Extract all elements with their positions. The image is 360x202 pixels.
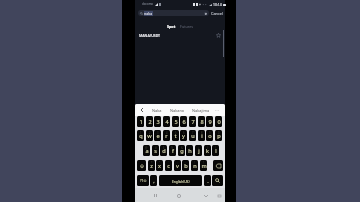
staticText: 0 [218, 131, 220, 135]
staticText: ＊＊ [202, 3, 208, 6]
staticText: ) [215, 146, 216, 150]
staticText: 4 [166, 131, 168, 135]
button[interactable]: . [204, 175, 211, 186]
button[interactable]: - [186, 145, 193, 156]
button[interactable]: Switch keyboard [214, 188, 224, 202]
button[interactable]: Home [174, 188, 184, 202]
button[interactable]: ) [212, 145, 219, 156]
button[interactable]: & [178, 145, 185, 156]
button[interactable]: 6 [180, 130, 187, 141]
button[interactable]: ? [200, 160, 207, 171]
staticText: c [167, 162, 170, 170]
staticText: , [153, 177, 155, 185]
button[interactable]: More suggestions [213, 104, 221, 116]
staticText: b [184, 162, 188, 170]
button[interactable]: 3 [154, 130, 161, 141]
staticText: q [139, 132, 143, 140]
staticText: & [181, 146, 183, 150]
staticText: s [154, 147, 157, 155]
button[interactable]: 9 [206, 116, 213, 127]
button[interactable]: 0 [215, 116, 222, 127]
button[interactable]: Recents [150, 188, 160, 202]
button[interactable]: Spot [165, 24, 178, 29]
staticText: 5 [175, 131, 177, 135]
button[interactable]: Search [212, 175, 223, 186]
button[interactable]: Hide keyboard [201, 188, 211, 202]
staticText: 9 [208, 118, 212, 126]
staticText: w [147, 132, 152, 140]
staticText: 8 [201, 131, 203, 135]
staticText: " [159, 161, 161, 165]
button[interactable]: 2 [146, 116, 153, 127]
staticText: ( [207, 146, 208, 150]
other: Add to favourites [216, 33, 221, 38]
button[interactable]: " [156, 160, 163, 171]
button[interactable]: 1 [137, 130, 144, 141]
staticText: r [165, 132, 168, 140]
button[interactable]: ?1① [137, 175, 149, 186]
staticText: ! [194, 161, 195, 165]
button[interactable]: 7 [189, 116, 196, 127]
staticText: naka [144, 11, 153, 16]
button[interactable]: 3 [154, 116, 161, 127]
staticText: o [208, 132, 212, 140]
button[interactable]: Nakano [166, 104, 188, 116]
button[interactable]: 5 [172, 116, 179, 127]
button[interactable]: ' [165, 160, 172, 171]
button[interactable]: : [174, 160, 181, 171]
staticText: 3 [157, 131, 159, 135]
staticText: f [172, 147, 174, 155]
button[interactable]: 4 [163, 116, 170, 127]
staticText: 10:14 [213, 2, 222, 7]
button[interactable]: Cancel [210, 10, 224, 16]
button[interactable]: 9 [206, 130, 213, 141]
staticText: z [150, 162, 153, 170]
staticText: English(US) [172, 179, 190, 183]
staticText: 0 [217, 118, 221, 126]
button[interactable]: 8 [198, 130, 205, 141]
button[interactable]: , [150, 175, 157, 186]
button[interactable]: Naka [146, 104, 168, 116]
staticText: h [188, 147, 192, 155]
staticText: e [156, 132, 160, 140]
staticText: p [217, 132, 221, 140]
button[interactable]: 8 [198, 116, 205, 127]
button[interactable]: 6 [180, 116, 187, 127]
button[interactable]: 2 [146, 130, 153, 141]
button[interactable]: $ [160, 145, 167, 156]
button[interactable]: 0 [215, 130, 222, 141]
button[interactable]: 7 [189, 130, 196, 141]
button[interactable]: Futures [178, 24, 196, 29]
staticText: @ [145, 146, 148, 150]
button[interactable]: # [152, 145, 159, 156]
button[interactable]: % [169, 145, 176, 156]
staticText: 4 [165, 118, 169, 126]
button[interactable]: English(US) [159, 175, 202, 186]
button[interactable]: Nakajima [190, 104, 212, 116]
button[interactable]: MANA/USDT [135, 31, 225, 39]
button[interactable]: Previous suggestions [137, 104, 146, 116]
button[interactable]: Shift [137, 160, 146, 171]
button[interactable]: @ [143, 145, 150, 156]
staticText: : [177, 161, 178, 165]
button[interactable]: 5 [172, 130, 179, 141]
button[interactable]: 4 [163, 130, 170, 141]
button[interactable]: naka [138, 10, 209, 16]
button[interactable]: Backspace [213, 160, 223, 171]
staticText: docomo [142, 2, 154, 6]
staticText: Cancel [211, 11, 223, 16]
button[interactable]: Clear search [204, 12, 207, 15]
staticText: 2 [148, 118, 152, 126]
button[interactable]: * [148, 160, 155, 171]
button[interactable]: ! [191, 160, 198, 171]
staticText: Spot [167, 24, 176, 29]
button[interactable]: ; [182, 160, 189, 171]
staticText: 1 [139, 118, 143, 126]
staticText: ' [168, 161, 169, 165]
staticText: j [198, 147, 200, 155]
button[interactable]: 1 [137, 116, 144, 127]
staticText: 6 [182, 118, 186, 126]
staticText: ? [203, 161, 205, 165]
button[interactable]: + [195, 145, 202, 156]
button[interactable]: ( [204, 145, 211, 156]
